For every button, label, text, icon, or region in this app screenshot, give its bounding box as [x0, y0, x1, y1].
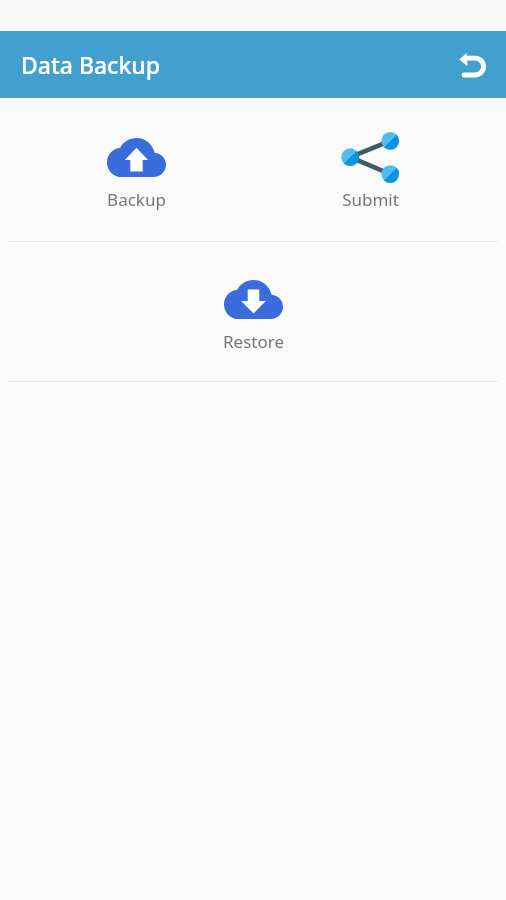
button[interactable]: Restore	[0, 242, 506, 381]
staticText: Backup	[107, 188, 166, 211]
staticText: Data Backup	[21, 49, 160, 80]
button[interactable]: Submit	[253, 98, 487, 241]
button[interactable]: Backup	[19, 98, 253, 241]
staticText: Submit	[342, 188, 399, 211]
button[interactable]: Undo	[448, 41, 496, 89]
staticText: Restore	[223, 330, 284, 353]
